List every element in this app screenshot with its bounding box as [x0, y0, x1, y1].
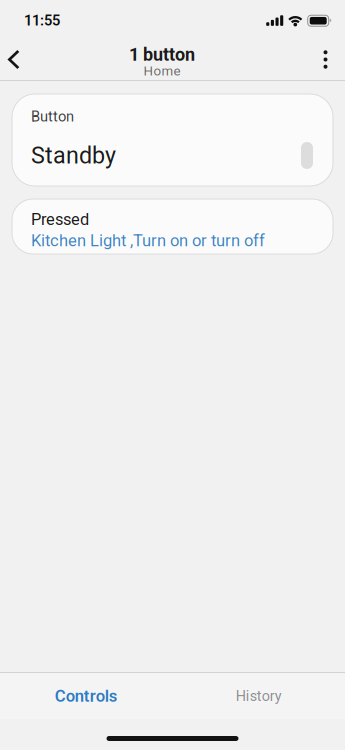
staticText: 1 button — [129, 44, 195, 65]
staticText: Standby — [31, 142, 116, 169]
button[interactable]: Pressed — [12, 199, 333, 254]
staticText: Pressed — [31, 210, 89, 229]
staticText: Home — [143, 63, 180, 79]
button[interactable]: More options — [301, 37, 345, 80]
staticText: History — [236, 688, 282, 704]
button[interactable]: Controls — [0, 673, 172, 719]
button[interactable]: Button — [12, 94, 333, 186]
staticText: Button — [31, 108, 74, 125]
button[interactable]: History — [172, 673, 345, 719]
button[interactable]: Back — [0, 37, 44, 80]
staticText: Controls — [55, 686, 118, 706]
staticText: Kitchen Light ,Turn on or turn off — [31, 231, 265, 250]
staticText: 11:55 — [24, 12, 60, 29]
